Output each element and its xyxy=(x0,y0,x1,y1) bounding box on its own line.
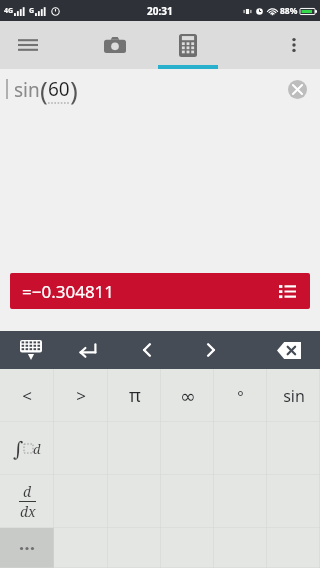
staticText: 4G xyxy=(4,6,14,16)
staticText: 20:31 xyxy=(147,4,173,18)
button[interactable]: Clear xyxy=(282,74,312,104)
staticText: sin xyxy=(14,77,40,103)
button[interactable]: ° xyxy=(214,369,267,422)
button[interactable]: Move left xyxy=(130,333,164,367)
button[interactable]: History xyxy=(274,278,300,304)
button[interactable]: > xyxy=(54,369,108,422)
staticText: ) xyxy=(70,72,78,107)
button[interactable]: < xyxy=(0,369,54,422)
staticText: 60 xyxy=(48,76,70,102)
button[interactable]: Enter xyxy=(70,333,104,367)
staticText: ° xyxy=(237,386,244,406)
button[interactable]: π xyxy=(108,369,161,422)
button[interactable]: Camera xyxy=(93,23,137,67)
staticText: d xyxy=(23,482,32,501)
staticText: d xyxy=(33,440,41,458)
staticText: π xyxy=(129,383,141,408)
staticText: G xyxy=(29,6,35,16)
button[interactable]: Move right xyxy=(194,333,228,367)
button[interactable]: Calculator xyxy=(166,23,210,67)
staticText: sin xyxy=(283,385,305,407)
staticText: < xyxy=(22,384,32,407)
button[interactable]: ∫ xyxy=(0,422,54,475)
button[interactable]: Menu xyxy=(8,25,48,65)
staticText: dx xyxy=(20,502,36,521)
button[interactable]: d xyxy=(0,475,54,528)
staticText: ∞ xyxy=(180,385,196,407)
staticText: > xyxy=(76,384,86,407)
staticText: 88% xyxy=(280,5,298,17)
staticText: ( xyxy=(40,72,48,107)
button[interactable]: sin xyxy=(267,369,320,422)
button[interactable] xyxy=(0,528,54,568)
button[interactable]: =−0.304811 xyxy=(10,273,310,309)
button[interactable]: More options xyxy=(274,25,314,65)
staticText: =−0.304811 xyxy=(22,280,115,303)
button[interactable]: Backspace xyxy=(272,333,306,367)
button[interactable]: ∞ xyxy=(161,369,214,422)
staticText: ∫ xyxy=(13,437,24,460)
button[interactable]: Hide keyboard xyxy=(14,333,48,367)
